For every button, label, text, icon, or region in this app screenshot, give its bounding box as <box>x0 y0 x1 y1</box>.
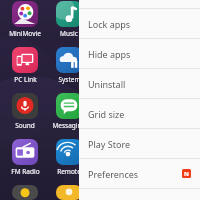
staticText: Play <box>107 29 120 38</box>
button[interactable]: Preferences <box>79 159 200 188</box>
staticText: Messaging <box>52 121 86 130</box>
button[interactable] <box>47 184 91 200</box>
button[interactable]: Misc <box>135 46 179 84</box>
staticText: Tools <box>105 75 121 84</box>
staticText: Files <box>106 167 120 176</box>
staticText: Grid size <box>88 108 125 120</box>
button[interactable]: Play Store <box>79 129 200 158</box>
staticText: Remote <box>57 167 81 176</box>
button[interactable] <box>3 184 47 200</box>
staticText: Sound Recorder <box>3 121 47 130</box>
button[interactable]: Messaging <box>47 92 91 130</box>
staticText: Apps <box>105 121 121 130</box>
button[interactable] <box>135 184 179 200</box>
staticText: Preferences <box>88 168 139 180</box>
staticText: MiniMovie <box>9 29 41 38</box>
staticText: Music <box>60 29 78 38</box>
button[interactable]: Tools <box>91 46 135 84</box>
button[interactable]: Remote <box>47 138 91 176</box>
button[interactable]: Apps <box>91 92 135 130</box>
button[interactable]: Lock apps <box>79 9 200 38</box>
staticText: FM Radio <box>11 167 40 176</box>
button[interactable]: Hide apps <box>79 39 200 68</box>
button[interactable]: Grid size <box>79 99 200 128</box>
button[interactable]: Extra <box>135 92 179 130</box>
button[interactable]: FM Radio <box>3 138 47 176</box>
staticText: Play Store <box>88 138 130 150</box>
button[interactable]: Play <box>91 0 135 38</box>
staticText: N <box>184 170 189 178</box>
button[interactable] <box>91 184 135 200</box>
button[interactable]: More <box>135 0 179 38</box>
button[interactable]: Files <box>91 138 135 176</box>
button[interactable]: Notes <box>135 138 179 176</box>
staticText: PC Link <box>14 75 37 84</box>
button[interactable]: PC Link <box>3 46 47 84</box>
button[interactable]: Uninstall <box>79 69 200 98</box>
button[interactable]: Sound Recorder <box>3 92 47 130</box>
staticText: System <box>58 75 81 84</box>
button[interactable]: System <box>47 46 91 84</box>
staticText: Extra <box>149 121 165 130</box>
button[interactable]: MiniMovie <box>3 0 47 38</box>
staticText: Lock apps <box>88 18 131 30</box>
staticText: Uninstall <box>88 78 126 90</box>
button[interactable]: Music <box>47 0 91 38</box>
staticText: Hide apps <box>88 48 131 60</box>
